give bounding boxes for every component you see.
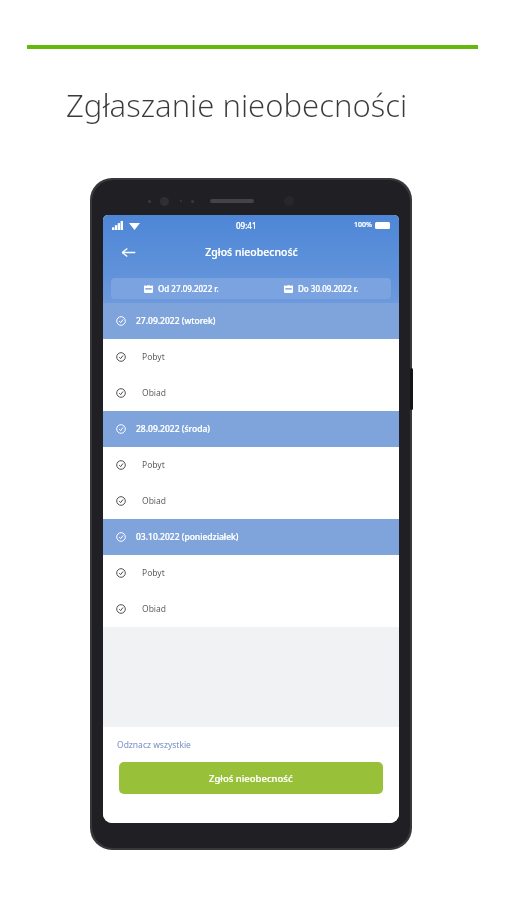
button[interactable]: Pobyt [116, 447, 399, 483]
button[interactable]: 03.10.2022 (poniedziałek) [116, 519, 399, 555]
staticText: Obiad [142, 387, 167, 399]
staticText: Zgłaszanie nieobecności [66, 84, 408, 126]
button[interactable]: Back [103, 235, 399, 269]
button[interactable]: Obiad [116, 375, 399, 411]
staticText: Obiad [142, 495, 167, 507]
button[interactable]: Od 27.09.2022 r. [111, 278, 251, 299]
staticText: 27.09.2022 (wtorek) [136, 315, 216, 327]
staticText: Pobyt [142, 351, 165, 363]
staticText: Zgłoś nieobecność [209, 772, 293, 785]
staticText: 100% [354, 220, 372, 230]
button[interactable]: Zgłoś nieobecność [119, 762, 383, 794]
button[interactable]: Back [115, 239, 141, 265]
button[interactable]: 27.09.2022 (wtorek) [116, 303, 399, 339]
staticText: Odznacz wszystkie [117, 739, 191, 751]
staticText: Pobyt [142, 567, 165, 579]
staticText: 09:41 [236, 220, 257, 231]
staticText: Pobyt [142, 459, 165, 471]
staticText: 03.10.2022 (poniedziałek) [136, 531, 239, 543]
button[interactable]: Pobyt [116, 555, 399, 591]
staticText: Do 30.09.2022 r. [298, 283, 359, 294]
button[interactable]: Obiad [116, 591, 399, 627]
staticText: 28.09.2022 (środa) [136, 423, 210, 435]
staticText: Zgłoś nieobecność [205, 245, 298, 259]
button[interactable]: Pobyt [116, 339, 399, 375]
button[interactable]: Obiad [116, 483, 399, 519]
staticText: Obiad [142, 603, 167, 615]
button[interactable]: 28.09.2022 (środa) [116, 411, 399, 447]
button[interactable]: Odznacz wszystkie [117, 739, 191, 751]
button[interactable]: Do 30.09.2022 r. [251, 278, 391, 299]
staticText: Od 27.09.2022 r. [158, 283, 219, 294]
